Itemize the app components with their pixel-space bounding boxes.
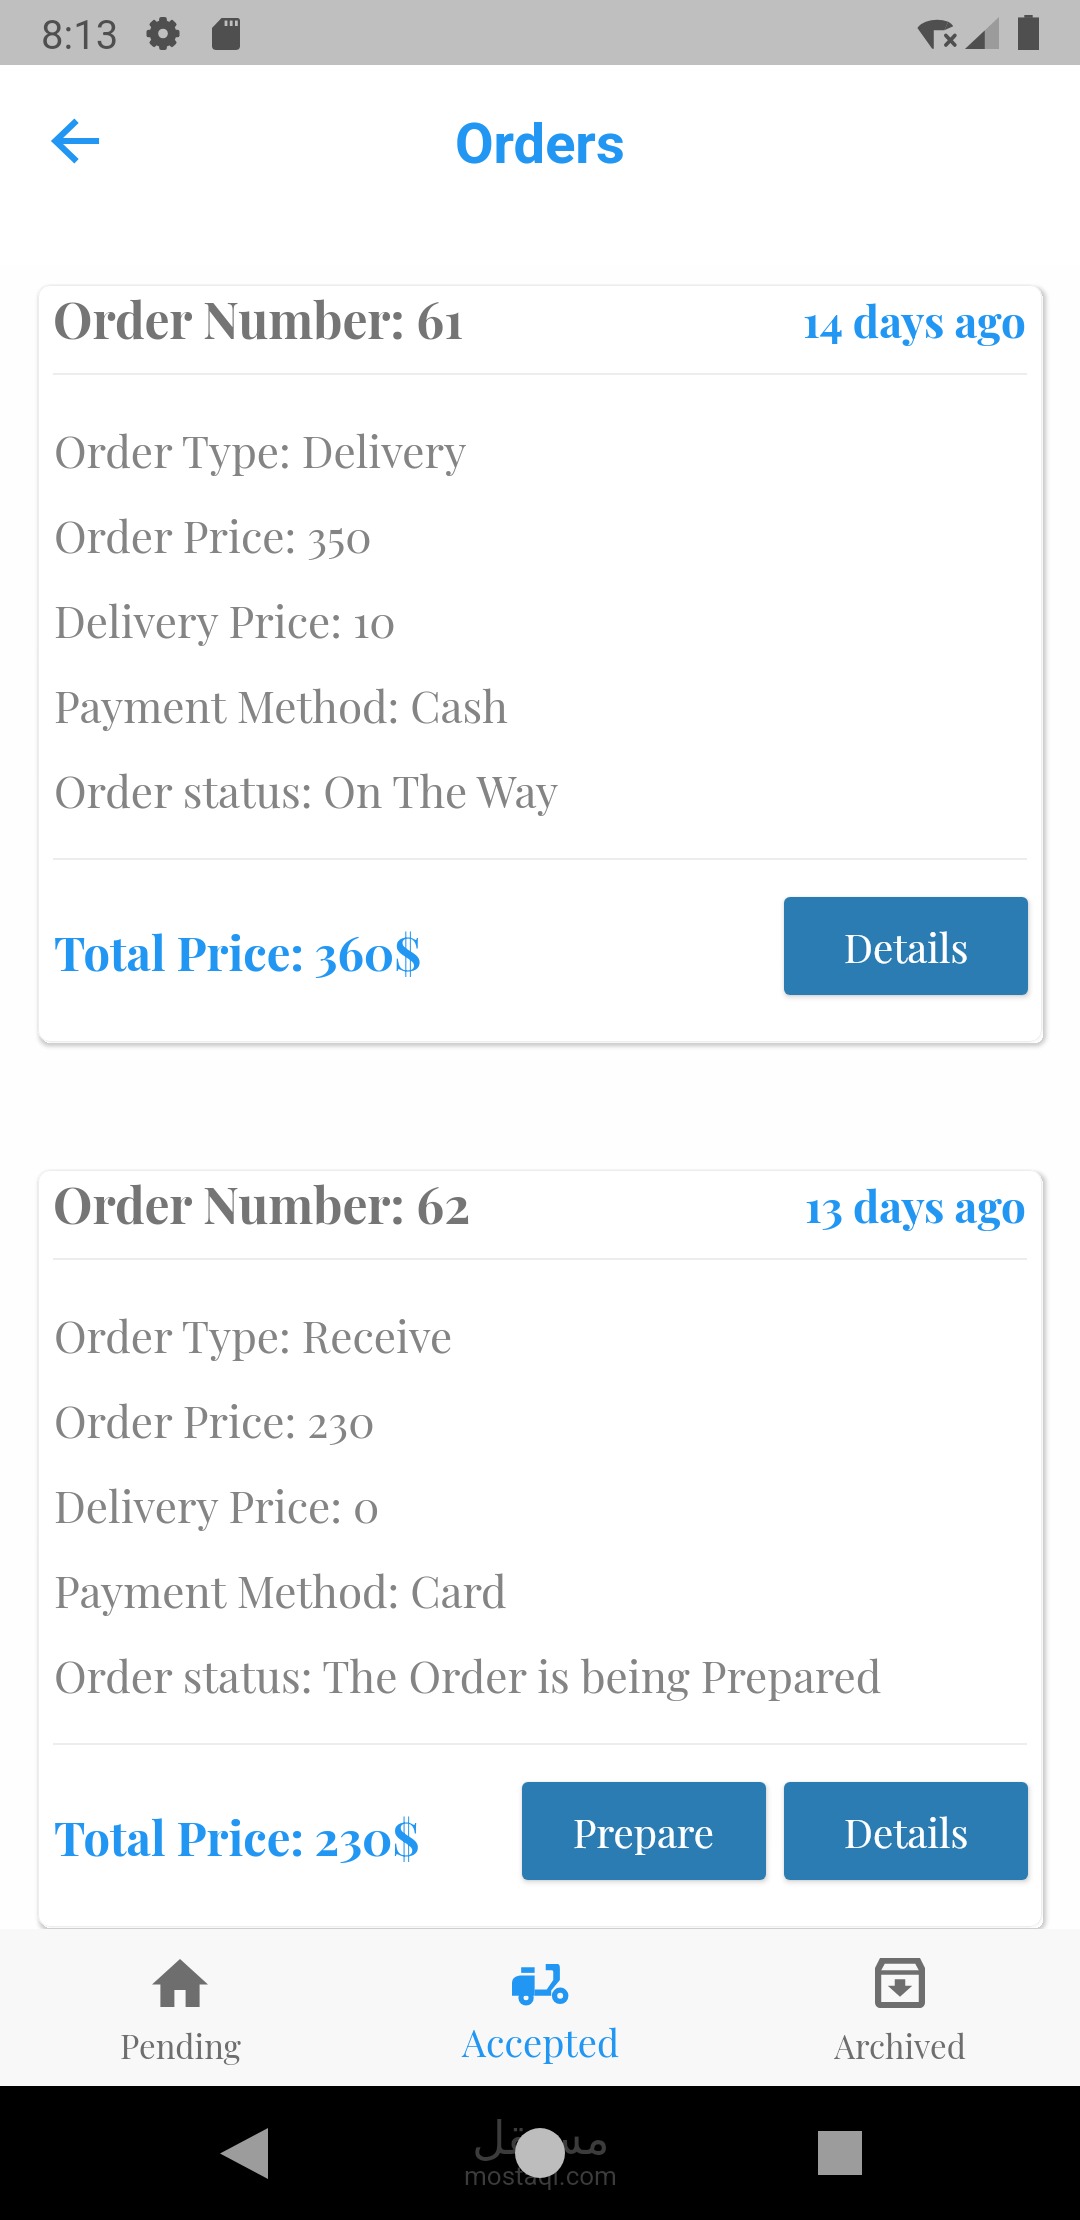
button[interactable]: Accepted <box>360 1929 720 2086</box>
staticText: Pending <box>120 2023 241 2067</box>
button[interactable]: Order Number: 61 <box>38 285 1042 1042</box>
staticText: Prepare <box>573 1805 715 1858</box>
staticText: Payment Method: Cash <box>54 675 508 734</box>
staticText: Payment Method: Card <box>54 1560 507 1619</box>
staticText: Order Price: 350 <box>54 505 372 564</box>
button[interactable]: Back <box>194 2103 294 2203</box>
button[interactable]: Order Number: 62 <box>38 1170 1042 1927</box>
staticText: 14 days ago <box>803 290 1026 349</box>
staticText: مستقل <box>472 2111 610 2165</box>
button[interactable]: Details <box>784 1782 1028 1880</box>
staticText: Order status: The Order is being Prepare… <box>54 1645 882 1704</box>
staticText: mostaql.com <box>464 2161 617 2191</box>
staticText: 13 days ago <box>805 1175 1026 1234</box>
staticText: Order Type: Receive <box>54 1305 453 1364</box>
staticText: Order status: On The Way <box>54 760 559 819</box>
button[interactable]: Recents <box>790 2103 890 2203</box>
staticText: Accepted <box>462 2016 619 2067</box>
staticText: Order Number: 61 <box>53 285 464 351</box>
staticText: Order Type: Delivery <box>54 420 467 479</box>
staticText: 8:13 <box>41 12 119 59</box>
staticText: Details <box>844 1805 969 1858</box>
staticText: Delivery Price: 10 <box>54 590 396 649</box>
staticText: Total Price: 360$ <box>54 920 422 983</box>
staticText: Delivery Price: 0 <box>54 1475 380 1534</box>
button[interactable]: Prepare <box>522 1782 766 1880</box>
staticText: Archived <box>834 2023 966 2067</box>
staticText: Orders <box>455 111 625 177</box>
button[interactable]: Back <box>23 87 131 195</box>
staticText: Total Price: 230$ <box>54 1805 420 1868</box>
button[interactable]: Archived <box>720 1929 1080 2086</box>
staticText: Order Number: 62 <box>53 1170 471 1236</box>
staticText: Details <box>844 920 969 973</box>
staticText: Order Price: 230 <box>54 1390 375 1449</box>
button[interactable]: Details <box>784 897 1028 995</box>
button[interactable]: Pending <box>0 1929 360 2086</box>
button[interactable]: Home <box>490 2103 590 2203</box>
